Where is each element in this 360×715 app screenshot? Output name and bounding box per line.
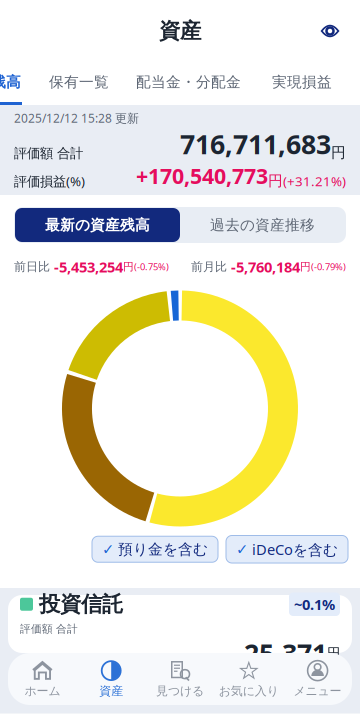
- staticText: +170,540,773: [136, 161, 268, 190]
- staticText: ~0.1%: [294, 594, 335, 614]
- staticText: 前日比: [14, 259, 50, 274]
- staticText: 円: [123, 260, 134, 273]
- button[interactable]: 見つける: [146, 654, 214, 704]
- staticText: 見つける: [156, 684, 204, 698]
- button[interactable]: お気に入り: [214, 654, 283, 704]
- staticText: お気に入り: [219, 684, 279, 698]
- staticText: ✓: [102, 541, 114, 557]
- staticText: ✓: [236, 541, 248, 557]
- staticText: 前月比: [191, 259, 227, 274]
- button[interactable]: 残高の表示切替: [310, 14, 350, 48]
- staticText: 716,711,683: [180, 126, 331, 161]
- staticText: -5,760,184: [227, 257, 300, 276]
- staticText: 資産: [159, 18, 201, 44]
- staticText: 配当金・分配金: [136, 73, 241, 91]
- staticText: iDeCoを含む: [252, 539, 338, 559]
- staticText: 保有一覧: [49, 73, 109, 91]
- staticText: 評価額 合計: [14, 145, 83, 161]
- button[interactable]: 資産残高: [0, 62, 36, 105]
- staticText: 資産: [99, 684, 123, 698]
- staticText: 実現損益: [272, 73, 332, 91]
- staticText: (-0.79%): [311, 260, 346, 273]
- staticText: 円: [327, 645, 340, 661]
- staticText: 2025/12/12 15:28 更新: [14, 110, 139, 126]
- staticText: 投資信託: [39, 591, 123, 617]
- staticText: 預り金を含む: [118, 540, 208, 558]
- staticText: 円: [331, 143, 346, 161]
- staticText: メニュー: [294, 684, 342, 698]
- button[interactable]: メニュー: [283, 654, 352, 704]
- button[interactable]: 最新の資産残高: [15, 208, 180, 242]
- staticText: 最新の資産残高: [45, 216, 150, 234]
- staticText: (-0.75%): [134, 260, 169, 273]
- staticText: 円: [300, 260, 311, 273]
- button[interactable]: 実現損益: [255, 62, 342, 105]
- staticText: 資産残高: [0, 73, 21, 91]
- button[interactable]: 配当金・分配金: [122, 62, 255, 105]
- staticText: 評価損益(%): [14, 172, 85, 190]
- staticText: 円: [268, 172, 283, 190]
- button[interactable]: 保有一覧: [36, 62, 122, 105]
- button[interactable]: 資産: [77, 654, 146, 704]
- button[interactable]: ホーム: [8, 654, 77, 704]
- staticText: 評価額 合計: [20, 622, 78, 635]
- button[interactable]: ✓: [226, 535, 348, 563]
- staticText: -5,453,254: [50, 257, 123, 276]
- staticText: 25,371: [244, 635, 327, 671]
- button[interactable]: 過去の資産推移: [180, 208, 345, 242]
- staticText: 過去の資産推移: [210, 216, 315, 234]
- staticText: ホーム: [24, 684, 60, 698]
- staticText: (+31.21%): [283, 172, 346, 190]
- button[interactable]: 投資信託: [0, 588, 360, 653]
- button[interactable]: ✓: [92, 536, 218, 562]
